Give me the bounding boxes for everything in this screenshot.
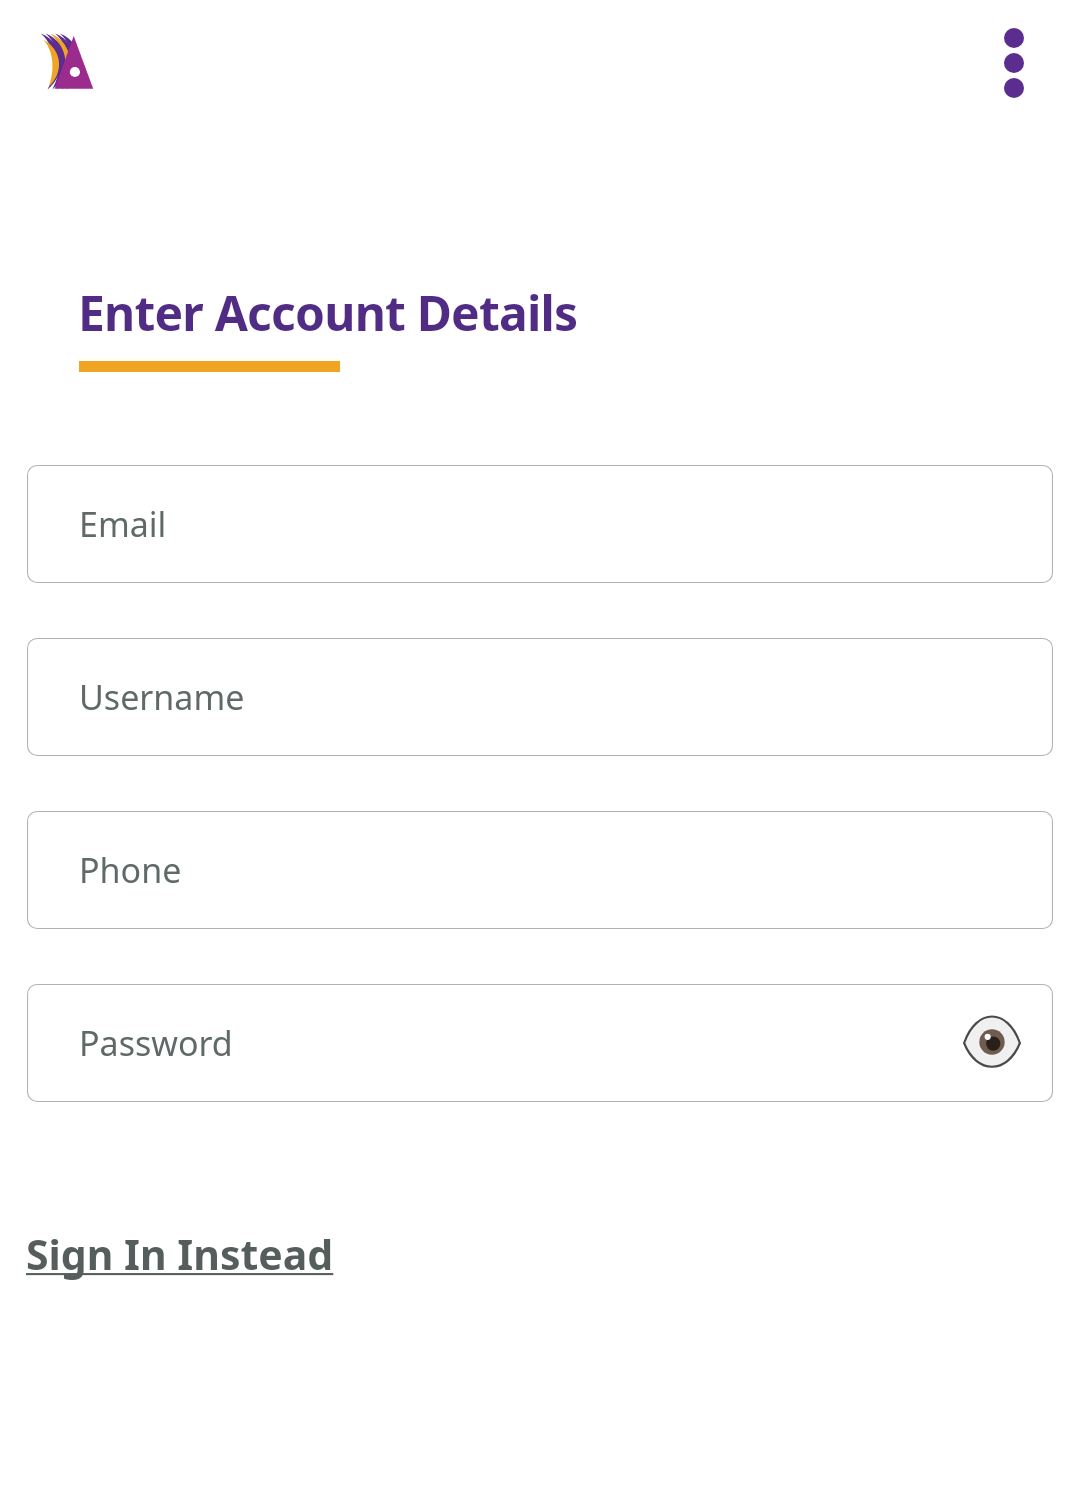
- button[interactable]: Adscrier logo: [38, 30, 276, 90]
- button[interactable]: Username: [27, 638, 1053, 756]
- staticText: Phone: [79, 847, 182, 893]
- staticText: Password: [79, 1020, 233, 1066]
- button[interactable]: Show password: [961, 1012, 1023, 1074]
- button[interactable]: More options: [988, 18, 1040, 108]
- button[interactable]: Email: [27, 465, 1053, 583]
- staticText: Username: [79, 674, 245, 720]
- button[interactable]: Phone: [27, 811, 1053, 929]
- staticText: Email: [79, 501, 167, 547]
- staticText: Enter Account Details: [78, 280, 578, 345]
- button[interactable]: Sign In Instead: [24, 1220, 336, 1288]
- staticText: Sign In Instead: [26, 1226, 334, 1282]
- button[interactable]: Password: [27, 984, 1053, 1102]
